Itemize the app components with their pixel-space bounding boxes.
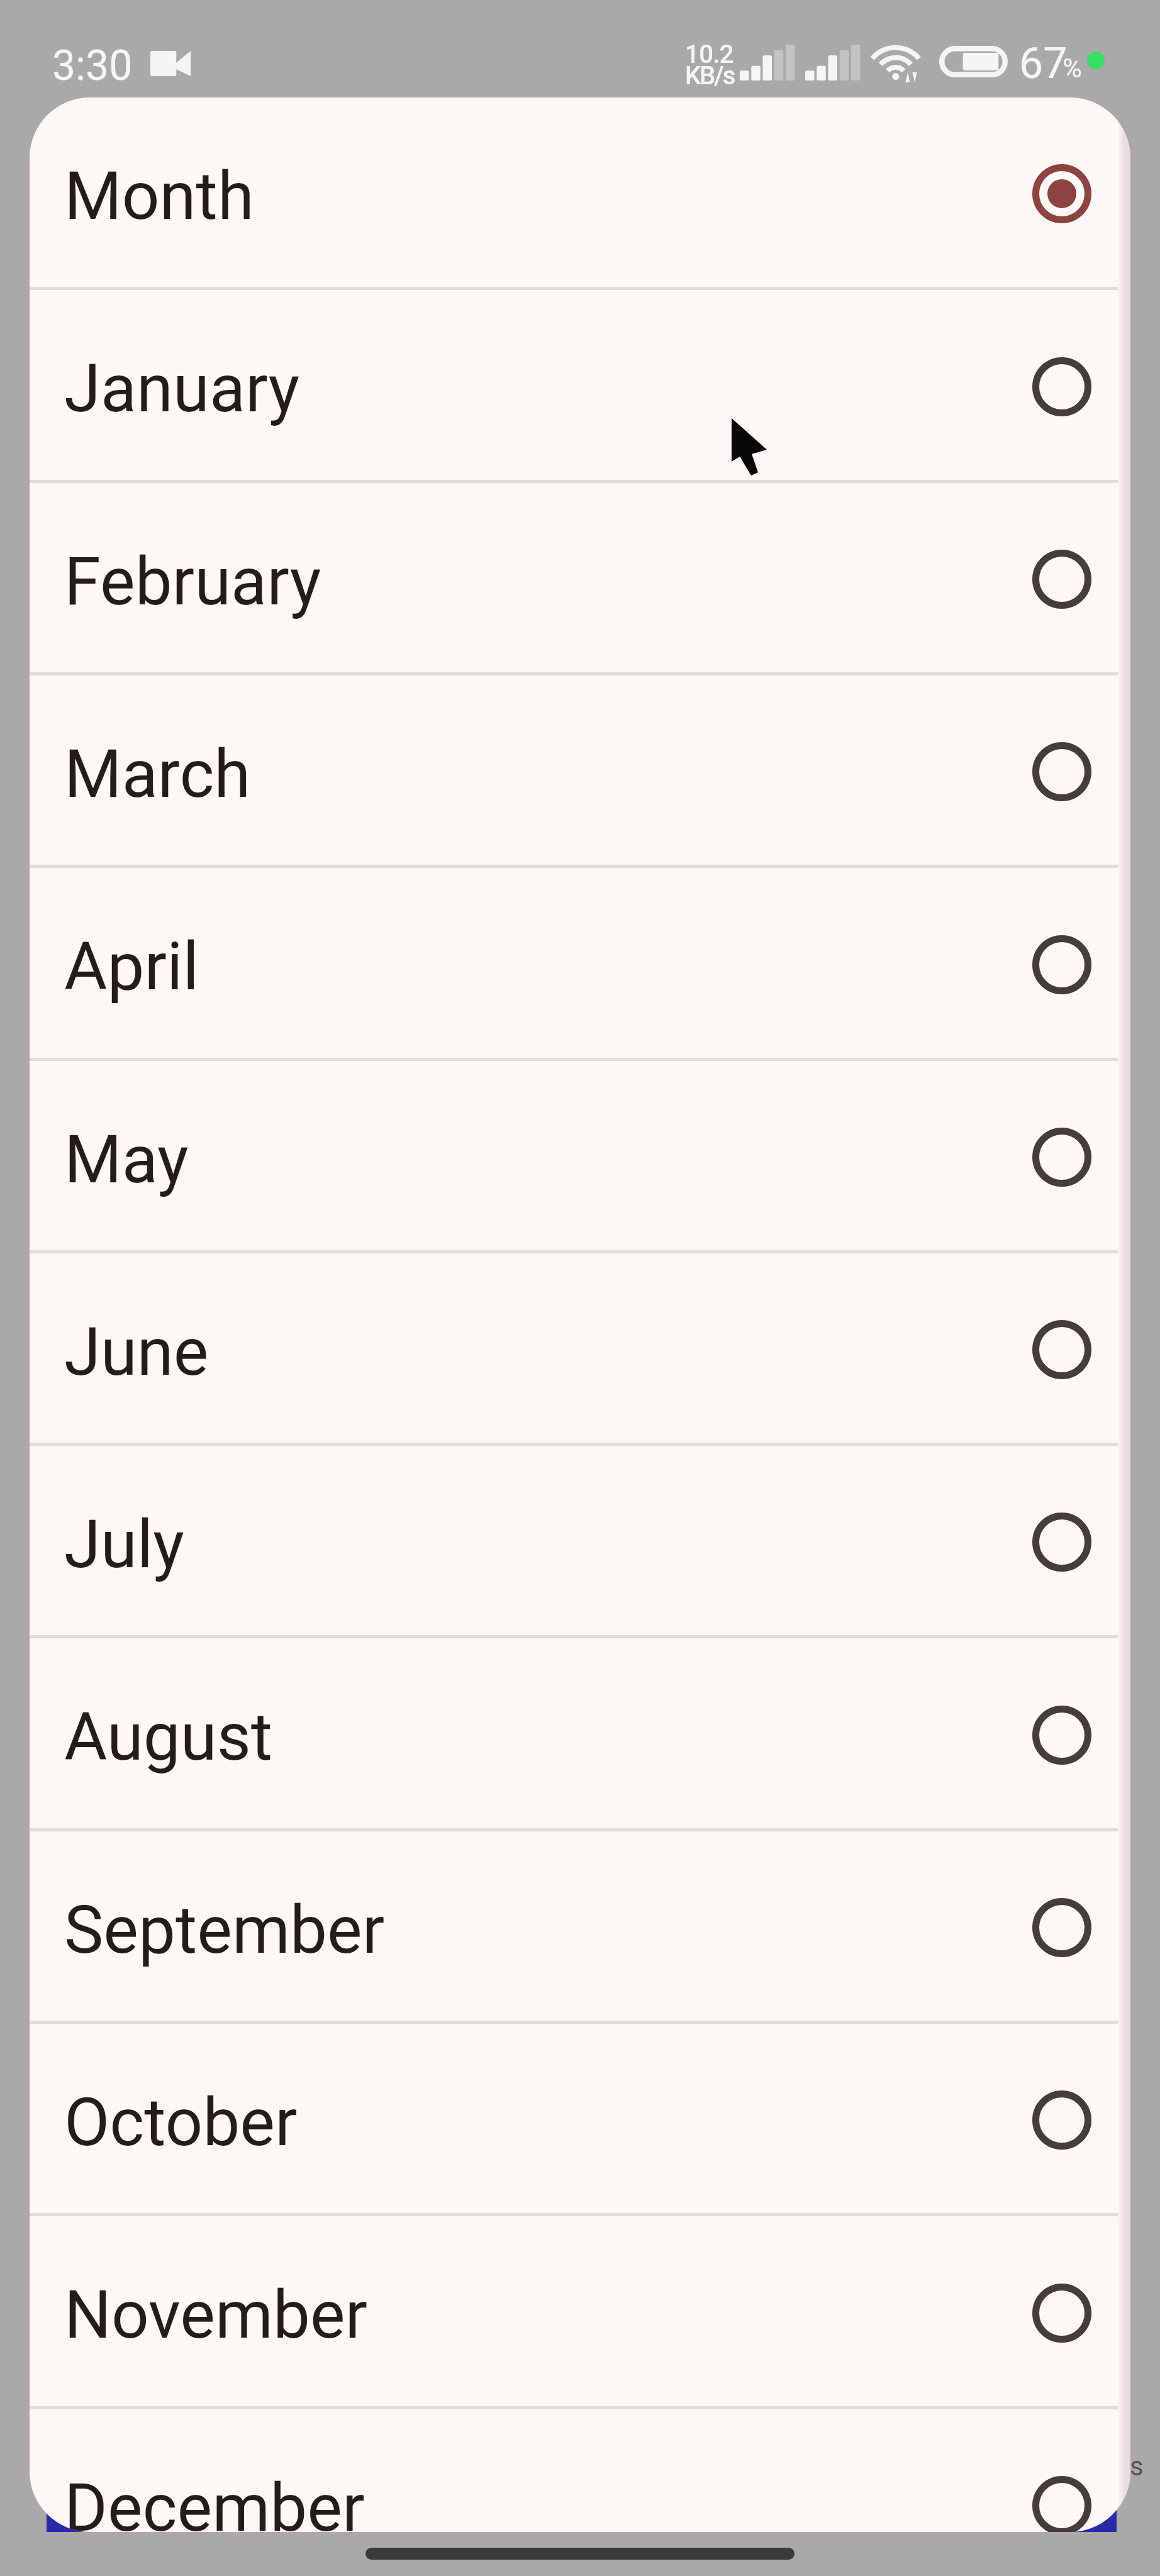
button[interactable]: July: [30, 1446, 1130, 1638]
button[interactable]: June: [30, 1253, 1130, 1446]
other: Not selected: [1032, 2090, 1092, 2150]
staticText: Month: [64, 158, 254, 235]
staticText: February: [64, 543, 321, 621]
button[interactable]: March: [30, 675, 1130, 868]
other: Mobile signal: [805, 45, 860, 80]
staticText: March: [64, 736, 251, 813]
other: Not selected: [1032, 357, 1092, 417]
button[interactable]: November: [30, 2216, 1130, 2409]
button[interactable]: May: [30, 1061, 1130, 1253]
other: Not selected: [1032, 1319, 1092, 1380]
other: Screen recording: [150, 51, 191, 76]
other: Mobile signal: [740, 45, 795, 80]
other: Not selected: [1032, 549, 1092, 609]
button[interactable]: December: [30, 2409, 1130, 2532]
other: Selected: [1032, 164, 1092, 224]
other: Not selected: [1032, 741, 1092, 802]
staticText: August: [64, 1699, 273, 1776]
other: Not selected: [1032, 2283, 1092, 2343]
staticText: May: [64, 1121, 189, 1199]
other: Not selected: [1032, 1897, 1092, 1958]
staticText: s: [1130, 2451, 1144, 2482]
button[interactable]: September: [30, 1831, 1130, 2024]
other: Not selected: [1032, 1705, 1092, 1765]
staticText: July: [64, 1506, 185, 1584]
other: Wi-Fi: [868, 41, 928, 86]
staticText: January: [64, 350, 300, 428]
staticText: KB/s: [685, 61, 735, 91]
other: Not selected: [1032, 2475, 1092, 2532]
other: Not selected: [1032, 935, 1092, 995]
button[interactable]: Month: [30, 97, 1130, 290]
other: Not selected: [1032, 1127, 1092, 1187]
staticText: 67: [1019, 38, 1068, 89]
button[interactable]: February: [30, 483, 1130, 675]
staticText: 3:30: [52, 42, 133, 90]
staticText: September: [64, 1892, 385, 1969]
staticText: April: [64, 928, 199, 1006]
button[interactable]: April: [30, 868, 1130, 1061]
button[interactable]: October: [30, 2024, 1130, 2216]
staticText: December: [64, 2470, 365, 2532]
button[interactable]: January: [30, 290, 1130, 483]
other: Battery 67 percent: [939, 46, 1008, 77]
staticText: %: [1062, 53, 1082, 84]
button[interactable]: August: [30, 1638, 1130, 1831]
staticText: November: [64, 2277, 368, 2354]
staticText: 10.2: [685, 40, 733, 69]
staticText: October: [64, 2084, 298, 2162]
staticText: June: [64, 1314, 209, 1391]
other: Not selected: [1032, 1512, 1092, 1572]
